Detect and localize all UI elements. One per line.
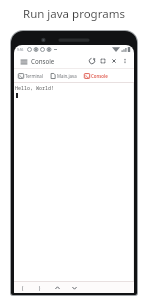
button[interactable]: More options bbox=[119, 55, 130, 67]
staticText: ) bbox=[38, 284, 42, 291]
staticText: Main.java bbox=[57, 73, 77, 79]
staticText: 9:56 bbox=[17, 48, 24, 52]
button[interactable]: Move up bbox=[53, 282, 61, 293]
staticText: Console bbox=[31, 57, 55, 65]
button[interactable]: Console bbox=[83, 69, 109, 82]
button[interactable]: Refresh bbox=[86, 55, 97, 67]
button[interactable]: ( bbox=[19, 282, 27, 293]
staticText: Run java programs bbox=[23, 6, 125, 22]
button[interactable]: Main.java bbox=[49, 69, 78, 82]
button[interactable]: Open navigation menu bbox=[18, 56, 29, 67]
button[interactable]: ) bbox=[36, 282, 44, 293]
staticText: Console bbox=[91, 73, 108, 79]
button[interactable]: Expand bbox=[97, 55, 108, 67]
button[interactable]: Terminal bbox=[17, 69, 44, 82]
button[interactable]: Move down bbox=[70, 282, 78, 293]
button[interactable]: Close bbox=[108, 55, 119, 67]
staticText: Terminal bbox=[25, 73, 43, 79]
staticText: ( bbox=[21, 284, 25, 291]
staticText: Hello, World! bbox=[15, 85, 55, 92]
